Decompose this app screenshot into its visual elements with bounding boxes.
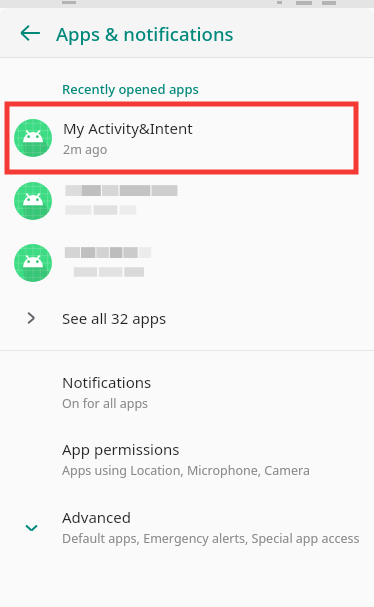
staticText: See all 32 apps (62, 308, 167, 328)
button[interactable]: See all 32 apps (0, 294, 374, 342)
button[interactable] (0, 170, 374, 232)
button[interactable]: My Activity&Intent (0, 106, 374, 170)
staticText: On for all apps (62, 395, 149, 412)
staticText: 2m ago (63, 141, 108, 158)
staticText: Advanced (62, 507, 132, 527)
staticText: Recently opened apps (62, 80, 199, 98)
button[interactable]: Back (10, 13, 50, 53)
button[interactable]: App permissions (0, 439, 374, 479)
staticText: Notifications (62, 372, 152, 392)
staticText: My Activity&Intent (63, 118, 193, 138)
button[interactable]: Advanced (0, 507, 374, 547)
staticText: Apps & notifications (56, 21, 234, 46)
staticText: Default apps, Emergency alerts, Special … (62, 530, 360, 547)
button[interactable] (0, 232, 374, 294)
button[interactable]: Notifications (0, 372, 374, 412)
staticText: App permissions (62, 439, 180, 459)
staticText: Apps using Location, Microphone, Camera (62, 462, 310, 479)
